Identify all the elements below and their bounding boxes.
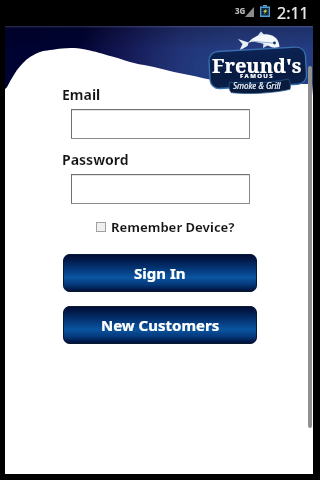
staticText: Smoke & Grill bbox=[233, 80, 281, 91]
staticText: Freund's bbox=[212, 52, 302, 79]
button[interactable] bbox=[71, 109, 250, 139]
staticText: Password bbox=[62, 150, 129, 169]
staticText: Sign In bbox=[134, 263, 186, 283]
button[interactable] bbox=[71, 174, 250, 204]
staticText: Email bbox=[62, 85, 101, 104]
staticText: New Customers bbox=[101, 315, 220, 335]
staticText: 3G bbox=[235, 5, 246, 16]
staticText: 2:11 bbox=[277, 2, 309, 24]
button[interactable]: Sign In bbox=[63, 254, 257, 292]
button[interactable]: Remember Device? bbox=[96, 218, 313, 236]
button[interactable]: New Customers bbox=[63, 306, 257, 344]
staticText: Remember Device? bbox=[111, 218, 235, 236]
staticText: FAMOUS bbox=[240, 72, 274, 80]
